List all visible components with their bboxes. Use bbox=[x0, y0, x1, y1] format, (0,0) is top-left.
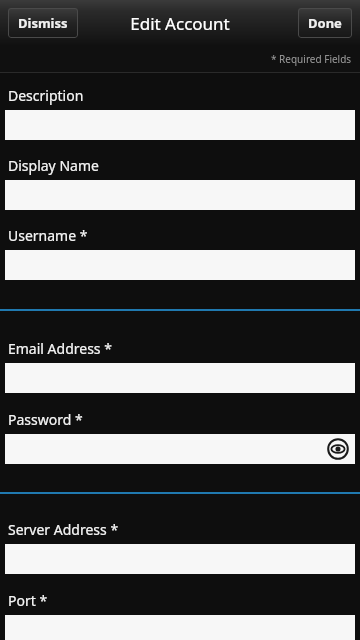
staticText: Port * bbox=[8, 591, 48, 610]
staticText: Dismiss bbox=[18, 14, 68, 32]
staticText: Email Address * bbox=[8, 339, 112, 358]
staticText: Done bbox=[308, 14, 342, 32]
button[interactable]: Done bbox=[298, 8, 352, 38]
staticText: Display Name bbox=[8, 156, 99, 175]
staticText: Description bbox=[8, 86, 84, 105]
button[interactable]: Dismiss bbox=[8, 8, 78, 38]
button[interactable]: Show password bbox=[5, 434, 355, 464]
staticText: * Required Fields bbox=[271, 52, 352, 66]
staticText: Edit Account bbox=[130, 12, 230, 35]
staticText: Server Address * bbox=[8, 520, 119, 539]
button[interactable]: Show password bbox=[325, 436, 351, 462]
staticText: Username * bbox=[8, 226, 88, 245]
staticText: Password * bbox=[8, 410, 83, 429]
